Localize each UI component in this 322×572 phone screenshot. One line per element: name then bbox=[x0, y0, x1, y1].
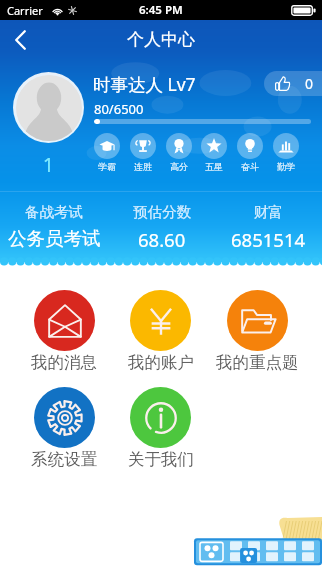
staticText: 1 bbox=[13, 152, 84, 178]
button[interactable]: 学霸 bbox=[94, 133, 120, 177]
button[interactable]: 系统设置 bbox=[16, 387, 112, 470]
button[interactable]: 连胜 bbox=[130, 133, 156, 177]
staticText: 连胜 bbox=[134, 161, 152, 172]
staticText: 高分 bbox=[170, 161, 188, 172]
button[interactable]: 财富 bbox=[215, 192, 322, 262]
staticText: 系统设置 bbox=[31, 449, 97, 470]
button[interactable]: 奋斗 bbox=[237, 133, 263, 177]
staticText: Carrier bbox=[7, 3, 43, 18]
staticText: 我的账户 bbox=[128, 352, 194, 373]
staticText: 68.60 bbox=[138, 227, 186, 252]
staticText: 6851514 bbox=[231, 227, 306, 252]
button[interactable]: Avatar bbox=[13, 72, 84, 143]
button[interactable]: 预估分数 bbox=[108, 192, 215, 262]
staticText: 0 bbox=[305, 74, 314, 93]
button[interactable]: 我的账户 bbox=[112, 290, 209, 373]
staticText: 我的重点题 bbox=[216, 352, 299, 373]
staticText: 备战考试 bbox=[25, 203, 83, 221]
button[interactable]: 我的重点题 bbox=[209, 290, 306, 373]
staticText: 财富 bbox=[254, 203, 283, 221]
staticText: 个人中心 bbox=[127, 29, 195, 50]
staticText: 奋斗 bbox=[241, 161, 259, 172]
button[interactable]: 备战考试 bbox=[0, 192, 108, 262]
staticText: 关于我们 bbox=[128, 449, 194, 470]
staticText: 公务员考试 bbox=[8, 227, 101, 250]
button[interactable]: Back bbox=[0, 20, 40, 60]
button[interactable]: Like bbox=[264, 71, 322, 96]
staticText: 勤学 bbox=[277, 161, 295, 172]
staticText: 学霸 bbox=[98, 161, 116, 172]
staticText: 时事达人 Lv7 bbox=[93, 72, 196, 96]
staticText: 预估分数 bbox=[133, 203, 191, 221]
button[interactable]: 关于我们 bbox=[112, 387, 209, 470]
staticText: 6:45 PM bbox=[139, 2, 183, 18]
staticText: 80/6500 bbox=[94, 100, 144, 118]
button[interactable]: 我的消息 bbox=[16, 290, 112, 373]
staticText: 五星 bbox=[205, 161, 223, 172]
staticText: 我的消息 bbox=[31, 352, 97, 373]
button[interactable] bbox=[94, 119, 311, 124]
button[interactable]: 五星 bbox=[201, 133, 227, 177]
button[interactable]: 高分 bbox=[166, 133, 192, 177]
button[interactable]: 勤学 bbox=[273, 133, 299, 177]
